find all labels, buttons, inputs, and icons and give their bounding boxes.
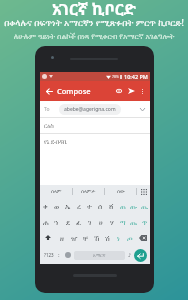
button[interactable]: More options (138, 84, 147, 98)
staticText: ሰ (98, 203, 103, 210)
staticText: Compose (57, 86, 91, 96)
button[interactable]: ጦ (124, 230, 135, 246)
button[interactable]: Period (55, 246, 63, 264)
staticText: ሰላም (51, 189, 62, 194)
staticText: ፈ (76, 219, 82, 226)
button[interactable]: ተ (84, 198, 95, 214)
button[interactable]: ቀ (40, 198, 51, 214)
button[interactable]: ጢ (139, 198, 150, 214)
staticText: ♪ (128, 252, 132, 258)
staticText: ኤ (65, 203, 71, 210)
staticText: ዘ (60, 235, 64, 242)
button[interactable]: ጣ (117, 214, 128, 230)
button[interactable]: ሃ (106, 214, 117, 230)
button[interactable]: ረ (73, 198, 84, 214)
staticText: አገርኛ ኪቦርድ (0, 0, 188, 20)
button[interactable]: ኸ (91, 230, 102, 246)
button[interactable]: Emoji (63, 246, 73, 264)
button[interactable]: ሰ (95, 198, 106, 214)
button[interactable]: ዠ (68, 230, 80, 246)
button[interactable]: ዘ (56, 230, 68, 246)
staticText: ሀ (99, 219, 103, 226)
button[interactable]: ነ (113, 230, 124, 246)
button[interactable]: ሰላም (40, 185, 72, 198)
button[interactable]: Back (44, 86, 54, 96)
button[interactable]: የኔ ደብዳቤ (44, 134, 146, 150)
staticText: ገ (88, 219, 92, 226)
staticText: ለሁሉም ዓይነት ስልኮች በነጻ የሚቀርብ የአማርኛ አገልግሎት (0, 31, 188, 41)
staticText: ጥ (142, 219, 148, 226)
staticText: : (58, 251, 60, 259)
button[interactable]: Voice input (125, 246, 134, 264)
staticText: ጣ (120, 219, 126, 226)
button[interactable]: ሰው (105, 185, 136, 198)
staticText: ሰላምታ (81, 189, 96, 194)
staticText: ሰው (117, 189, 125, 194)
staticText: To (44, 106, 50, 113)
button[interactable]: ሐ (40, 214, 51, 230)
button[interactable]: ወ (51, 198, 62, 214)
staticText: ጡ (130, 203, 138, 210)
staticText: ሸ (109, 203, 114, 210)
staticText: ጤ (130, 219, 137, 226)
button[interactable]: ጡ (128, 198, 139, 214)
staticText: የኔ ደብዳቤ (44, 138, 68, 146)
button[interactable]: ርዕስ (44, 118, 146, 133)
button[interactable]: To (44, 101, 147, 117)
button[interactable]: ሽ (102, 230, 113, 246)
button[interactable]: ጠ (117, 198, 128, 214)
button[interactable]: ሰላምታ (73, 185, 104, 198)
staticText: ጦ (127, 235, 133, 242)
button[interactable]: ቸ (80, 230, 91, 246)
button[interactable]: ሸ (106, 198, 117, 214)
staticText: ተ (87, 203, 92, 210)
button[interactable]: ጤ (128, 214, 139, 230)
button[interactable]: Send (126, 84, 137, 98)
button[interactable]: ደ (62, 214, 73, 230)
staticText: ደ (66, 219, 70, 226)
staticText: ቸ (83, 235, 88, 242)
staticText: abebe@agerigna.com (64, 106, 116, 113)
staticText: ሽ (105, 235, 110, 242)
staticText: ?123 (44, 252, 54, 258)
staticText: ረ (77, 203, 81, 210)
staticText: ሃ (110, 219, 114, 226)
staticText: 78% (112, 74, 119, 79)
button[interactable]: ?123 (42, 246, 55, 264)
button[interactable]: ፈ (73, 214, 84, 230)
button[interactable]: ኀ (51, 214, 62, 230)
button[interactable]: ሀ (95, 214, 106, 230)
staticText: 10:42 PM (124, 73, 148, 80)
staticText: ነ (117, 235, 120, 242)
staticText: ጠ (120, 203, 126, 210)
staticText: ዠ (71, 235, 78, 242)
staticText: ቀ (43, 203, 48, 210)
button[interactable]: ገ (84, 214, 95, 230)
button[interactable]: Keyboard settings (137, 185, 150, 198)
staticText: አማርኛ (93, 253, 106, 258)
button[interactable]: ኤ (62, 198, 73, 214)
button[interactable]: Shift (40, 230, 56, 246)
button[interactable]: ጥ (139, 214, 150, 230)
staticText: ርዕስ (44, 123, 54, 129)
button[interactable]: Enter (134, 249, 147, 262)
button[interactable]: Backspace (135, 230, 150, 246)
button[interactable]: Attach file (113, 84, 124, 98)
staticText: ኀ (54, 219, 59, 226)
staticText: ጢ (141, 203, 149, 210)
button[interactable]: አማርኛ (74, 251, 125, 260)
staticText: በቀላሉና በፍጥነት አማርኛን የሚጽፉበት ምርጥ ኪቦርድ! (0, 16, 188, 28)
staticText: ኸ (94, 235, 100, 242)
staticText: ወ (54, 203, 60, 210)
staticText: ሐ (43, 219, 49, 226)
